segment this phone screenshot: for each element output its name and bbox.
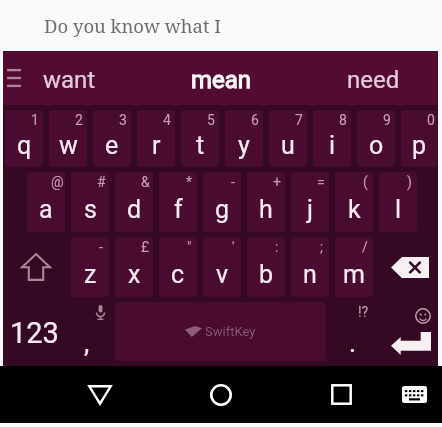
- staticText: £: [141, 239, 150, 255]
- staticText: s: [84, 195, 97, 224]
- staticText: q: [17, 131, 32, 160]
- button[interactable]: y: [225, 110, 263, 167]
- button[interactable]: q: [5, 110, 43, 167]
- staticText: m: [343, 260, 365, 289]
- staticText: 0: [427, 112, 435, 128]
- button[interactable]: a: [27, 172, 65, 232]
- staticText: 8: [339, 112, 347, 128]
- button[interactable]: Recent apps: [301, 366, 381, 423]
- staticText: p: [412, 131, 427, 160]
- staticText: ,: [84, 327, 90, 359]
- button[interactable]: c: [159, 237, 197, 297]
- staticText: :: [275, 239, 279, 255]
- button[interactable]: Keyboard menu: [0, 62, 26, 94]
- button[interactable]: .: [327, 302, 381, 361]
- staticText: u: [281, 131, 295, 160]
- button[interactable]: s: [71, 172, 109, 232]
- button[interactable]: j: [291, 172, 329, 232]
- staticText: x: [128, 260, 141, 289]
- button[interactable]: Shift: [3, 237, 68, 297]
- button[interactable]: u: [269, 110, 307, 167]
- button[interactable]: Switch keyboard: [389, 366, 439, 423]
- button[interactable]: i: [313, 110, 351, 167]
- staticText: t: [196, 131, 205, 160]
- staticText: j: [307, 195, 313, 224]
- staticText: ': [232, 239, 235, 255]
- staticText: l: [395, 195, 402, 224]
- button[interactable]: g: [203, 172, 241, 232]
- button[interactable]: x: [115, 237, 153, 297]
- button[interactable]: p: [401, 110, 438, 167]
- staticText: o: [369, 131, 384, 160]
- staticText: w: [59, 131, 78, 160]
- staticText: f: [174, 195, 183, 224]
- button[interactable]: want: [0, 51, 143, 105]
- button[interactable]: ,: [65, 302, 113, 361]
- staticText: k: [348, 195, 361, 224]
- button[interactable]: Home: [181, 366, 261, 423]
- button[interactable]: Enter: [381, 302, 438, 361]
- staticText: 123: [10, 316, 59, 350]
- button[interactable]: e: [93, 110, 131, 167]
- staticText: @: [51, 174, 64, 190]
- staticText: d: [127, 195, 142, 224]
- button[interactable]: need: [299, 51, 442, 105]
- button[interactable]: z: [71, 237, 109, 297]
- staticText: 9: [383, 112, 391, 128]
- staticText: v: [216, 260, 229, 289]
- staticText: 2: [75, 112, 83, 128]
- button[interactable]: t: [181, 110, 219, 167]
- button[interactable]: v: [203, 237, 241, 297]
- staticText: .: [349, 327, 357, 359]
- staticText: 3: [119, 112, 127, 128]
- staticText: g: [215, 195, 230, 224]
- staticText: -: [99, 239, 103, 255]
- staticText: ): [407, 174, 412, 190]
- staticText: 1: [31, 112, 39, 128]
- staticText: i: [329, 131, 336, 160]
- button[interactable]: h: [247, 172, 285, 232]
- staticText: n: [303, 260, 317, 289]
- button[interactable]: f: [159, 172, 197, 232]
- button[interactable]: o: [357, 110, 395, 167]
- staticText: z: [84, 260, 97, 289]
- staticText: y: [238, 131, 250, 160]
- button[interactable]: r: [137, 110, 175, 167]
- button[interactable]: b: [247, 237, 285, 297]
- staticText: 5: [207, 112, 215, 128]
- staticText: mean: [191, 66, 252, 94]
- staticText: #: [97, 174, 106, 190]
- staticText: need: [347, 66, 400, 94]
- button[interactable]: l: [379, 172, 417, 232]
- button[interactable]: Space: [115, 302, 326, 361]
- button[interactable]: k: [335, 172, 373, 232]
- staticText: -: [231, 174, 235, 190]
- staticText: c: [171, 260, 185, 289]
- staticText: (: [363, 174, 368, 190]
- staticText: =: [317, 174, 325, 190]
- button[interactable]: n: [291, 237, 329, 297]
- staticText: 6: [251, 112, 259, 128]
- button[interactable]: 123: [3, 302, 65, 361]
- staticText: b: [259, 260, 274, 289]
- button[interactable]: w: [49, 110, 87, 167]
- staticText: r: [152, 131, 161, 160]
- staticText: ": [187, 239, 192, 255]
- staticText: *: [186, 174, 193, 190]
- staticText: 7: [295, 112, 303, 128]
- staticText: e: [105, 131, 119, 160]
- staticText: Do you know what I: [44, 13, 222, 38]
- staticText: h: [259, 195, 273, 224]
- staticText: want: [43, 66, 96, 94]
- staticText: 4: [163, 112, 171, 128]
- staticText: +: [273, 174, 281, 190]
- button[interactable]: d: [115, 172, 153, 232]
- button[interactable]: Backspace: [376, 237, 438, 297]
- staticText: &: [141, 174, 150, 190]
- button[interactable]: m: [335, 237, 373, 297]
- button[interactable]: Back: [60, 366, 140, 423]
- button[interactable]: mean: [147, 51, 295, 105]
- staticText: /: [362, 239, 368, 255]
- staticText: ;: [320, 239, 323, 255]
- staticText: a: [39, 195, 53, 224]
